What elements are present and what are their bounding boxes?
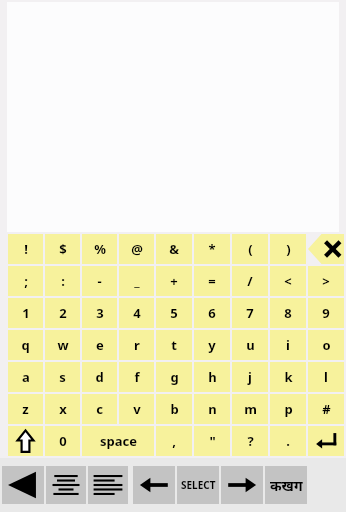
button[interactable]: i xyxy=(270,330,306,360)
button[interactable]: / xyxy=(232,266,268,296)
button[interactable]: - xyxy=(82,266,117,296)
button[interactable]: ( xyxy=(232,234,268,264)
button[interactable]: ! xyxy=(8,234,43,264)
staticText: n xyxy=(208,400,217,418)
staticText: & xyxy=(169,240,179,258)
button[interactable]: a xyxy=(8,362,43,392)
button[interactable]: f xyxy=(119,362,154,392)
button[interactable]: Align justify xyxy=(88,466,128,504)
button[interactable]: t xyxy=(156,330,192,360)
staticText: b xyxy=(170,400,179,418)
button[interactable]: d xyxy=(82,362,117,392)
button[interactable]: w xyxy=(45,330,80,360)
button[interactable]: > xyxy=(308,266,344,296)
button[interactable]: z xyxy=(8,394,43,424)
button[interactable]: h xyxy=(194,362,230,392)
button[interactable]: r xyxy=(119,330,154,360)
staticText: . xyxy=(286,432,290,450)
button[interactable]: u xyxy=(232,330,268,360)
button[interactable]: , xyxy=(156,426,192,456)
staticText: % xyxy=(94,240,106,258)
staticText: r xyxy=(134,336,140,354)
staticText: i xyxy=(286,336,290,354)
button[interactable]: . xyxy=(270,426,306,456)
staticText: c xyxy=(96,400,103,418)
button[interactable]: ; xyxy=(8,266,43,296)
button[interactable]: ? xyxy=(232,426,268,456)
button[interactable]: % xyxy=(82,234,117,264)
button[interactable]: $ xyxy=(45,234,80,264)
button[interactable]: Align center xyxy=(46,466,86,504)
button[interactable]: v xyxy=(119,394,154,424)
button[interactable]: _ xyxy=(119,266,154,296)
button[interactable]: g xyxy=(156,362,192,392)
button[interactable]: Previous xyxy=(133,466,175,504)
button[interactable]: Backspace xyxy=(308,234,344,264)
button[interactable]: Select xyxy=(177,466,219,504)
button[interactable]: c xyxy=(82,394,117,424)
staticText: _ xyxy=(134,272,140,290)
button[interactable]: : xyxy=(45,266,80,296)
button[interactable]: Next xyxy=(221,466,263,504)
button[interactable]: 0 xyxy=(45,426,80,456)
staticText: 4 xyxy=(133,304,141,322)
button[interactable]: space xyxy=(82,426,154,456)
staticText: " xyxy=(209,432,216,450)
staticText: 3 xyxy=(96,304,104,322)
button[interactable]: m xyxy=(232,394,268,424)
button[interactable]: 4 xyxy=(119,298,154,328)
staticText: x xyxy=(59,400,67,418)
staticText: ) xyxy=(286,240,291,258)
button[interactable]: 2 xyxy=(45,298,80,328)
button[interactable]: o xyxy=(308,330,344,360)
button[interactable]: x xyxy=(45,394,80,424)
button[interactable]: 7 xyxy=(232,298,268,328)
button[interactable]: # xyxy=(308,394,344,424)
button[interactable]: y xyxy=(194,330,230,360)
button[interactable]: @ xyxy=(119,234,154,264)
staticText: = xyxy=(208,272,216,290)
button[interactable]: n xyxy=(194,394,230,424)
button[interactable]: 8 xyxy=(270,298,306,328)
staticText: ? xyxy=(247,432,254,450)
button[interactable]: b xyxy=(156,394,192,424)
button[interactable]: ) xyxy=(270,234,306,264)
button[interactable]: 3 xyxy=(82,298,117,328)
button[interactable]: 9 xyxy=(308,298,344,328)
button[interactable]: j xyxy=(232,362,268,392)
button[interactable]: p xyxy=(270,394,306,424)
button[interactable]: < xyxy=(270,266,306,296)
button[interactable]: e xyxy=(82,330,117,360)
staticText: w xyxy=(57,336,69,354)
staticText: , xyxy=(172,432,176,450)
button[interactable]: k xyxy=(270,362,306,392)
button[interactable]: Enter xyxy=(308,426,344,456)
button[interactable]: = xyxy=(194,266,230,296)
staticText: f xyxy=(134,368,140,386)
button[interactable]: Switch to Devanagari xyxy=(265,466,307,504)
button[interactable]: " xyxy=(194,426,230,456)
button[interactable]: Shift xyxy=(8,426,43,456)
staticText: कखग xyxy=(270,476,303,495)
staticText: ( xyxy=(248,240,253,258)
button[interactable]: 6 xyxy=(194,298,230,328)
button[interactable]: q xyxy=(8,330,43,360)
button[interactable]: + xyxy=(156,266,192,296)
staticText: z xyxy=(22,400,29,418)
button[interactable]: Back xyxy=(2,466,44,504)
button[interactable]: * xyxy=(194,234,230,264)
staticText: 1 xyxy=(22,304,30,322)
staticText: > xyxy=(322,272,330,290)
staticText: + xyxy=(170,272,178,290)
staticText: q xyxy=(21,336,30,354)
staticText: 7 xyxy=(246,304,254,322)
staticText: t xyxy=(171,336,177,354)
button[interactable]: 5 xyxy=(156,298,192,328)
staticText: # xyxy=(322,400,331,418)
button[interactable]: 1 xyxy=(8,298,43,328)
staticText: SELECT xyxy=(181,478,216,492)
button[interactable]: l xyxy=(308,362,344,392)
button[interactable]: s xyxy=(45,362,80,392)
staticText: ; xyxy=(24,272,28,290)
button[interactable]: & xyxy=(156,234,192,264)
